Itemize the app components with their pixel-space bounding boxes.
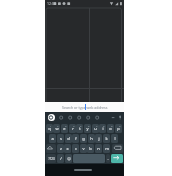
staticText: Search or type web address <box>62 105 108 110</box>
staticText: 4 <box>73 124 75 127</box>
staticText: y <box>86 126 89 131</box>
staticText: s <box>60 136 62 141</box>
staticText: b <box>89 146 92 151</box>
staticText: z <box>60 146 62 151</box>
staticText: o <box>109 126 112 131</box>
staticText: g <box>82 136 85 141</box>
staticText: 1 <box>50 124 52 127</box>
staticText: 8 <box>103 124 105 127</box>
staticText: 6 <box>88 124 90 127</box>
staticText: / <box>60 156 62 161</box>
staticText: m <box>105 146 109 151</box>
staticText: h <box>90 136 93 141</box>
staticText: k <box>105 136 108 141</box>
staticText: 3 <box>65 124 67 127</box>
staticText: . <box>107 156 109 161</box>
staticText: 0 <box>119 124 121 127</box>
staticText: u <box>94 126 97 131</box>
staticText: x <box>66 146 69 151</box>
staticText: 9 <box>111 124 113 127</box>
staticText: q <box>48 126 51 131</box>
staticText: a <box>51 136 54 141</box>
staticText: f <box>75 136 77 141</box>
staticText: d <box>67 136 70 141</box>
staticText: 2 <box>57 124 59 127</box>
staticText: n <box>97 146 100 151</box>
staticText: w <box>55 126 59 131</box>
staticText: l <box>114 136 116 141</box>
staticText: r <box>72 126 74 131</box>
staticText: 7 <box>96 124 98 127</box>
staticText: 12:00 <box>47 1 56 6</box>
staticText: ?123 <box>48 157 55 161</box>
staticText: c <box>75 146 77 151</box>
staticText: p <box>117 126 120 131</box>
staticText: ☺ <box>67 157 71 161</box>
staticText: 5 <box>80 124 82 127</box>
staticText: j <box>98 136 100 141</box>
staticText: t <box>79 126 81 131</box>
staticText: e <box>63 126 66 131</box>
staticText: i <box>102 126 104 131</box>
staticText: v <box>82 146 85 151</box>
